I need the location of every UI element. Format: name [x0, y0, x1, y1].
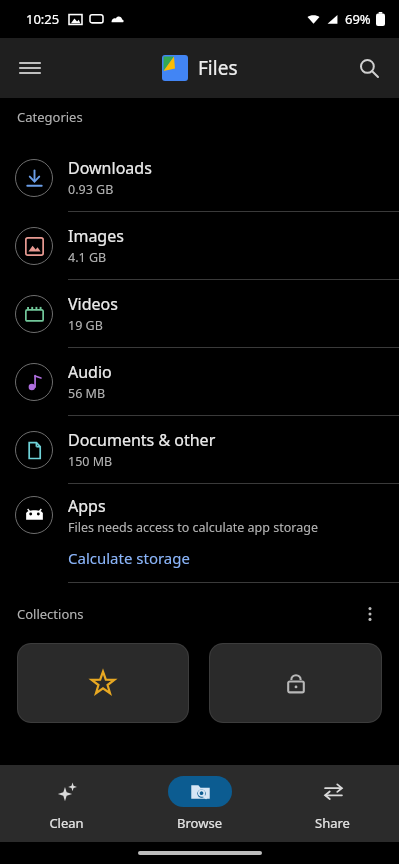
button[interactable]: Favorites — [17, 643, 189, 723]
staticText: Downloads — [68, 157, 152, 179]
button[interactable]: Browse — [133, 765, 266, 842]
button[interactable]: Clean — [0, 765, 133, 842]
staticText: 10:25 — [26, 10, 60, 28]
staticText: Calculate storage — [68, 548, 190, 568]
staticText: 150 MB — [68, 453, 113, 470]
staticText: 56 MB — [68, 385, 106, 402]
staticText: Documents & other — [68, 429, 216, 451]
button[interactable]: Audio — [0, 348, 399, 416]
staticText: Clean — [49, 814, 84, 832]
staticText: 19 GB — [68, 317, 103, 334]
button[interactable]: Safe folder — [209, 643, 382, 723]
button[interactable]: Calculate storage — [58, 546, 206, 582]
staticText: Videos — [68, 293, 118, 315]
button[interactable]: Images — [0, 212, 399, 280]
button[interactable]: Downloads — [0, 144, 399, 212]
button[interactable]: Search — [347, 46, 391, 90]
button[interactable]: Documents & other — [0, 416, 399, 484]
staticText: Share — [315, 814, 350, 832]
staticText: Images — [68, 225, 124, 247]
button[interactable]: Apps — [0, 484, 399, 546]
staticText: Categories — [17, 108, 83, 126]
staticText: 0.93 GB — [68, 181, 114, 198]
staticText: 4.1 GB — [68, 249, 107, 266]
staticText: Files — [198, 55, 238, 81]
staticText: Browse — [177, 814, 222, 832]
staticText: Apps — [68, 495, 106, 517]
button[interactable]: Videos — [0, 280, 399, 348]
staticText: Audio — [68, 361, 112, 383]
button[interactable]: More options — [353, 599, 387, 629]
button[interactable]: Share — [266, 765, 399, 842]
button[interactable]: Open navigation menu — [8, 46, 52, 90]
staticText: Collections — [17, 605, 84, 623]
staticText: 69% — [345, 10, 371, 28]
staticText: Files needs access to calculate app stor… — [68, 519, 318, 536]
